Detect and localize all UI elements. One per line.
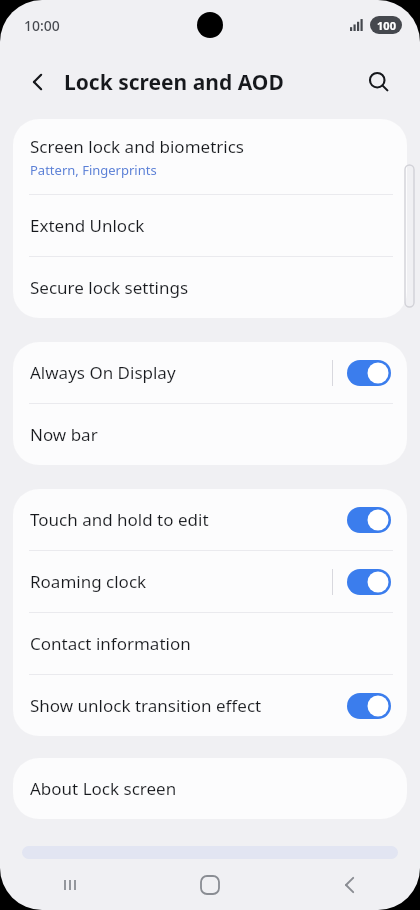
staticText: Now bar [30,423,98,446]
button[interactable]: Extend Unlock [13,195,407,256]
button[interactable]: Roaming clock [13,551,407,612]
button[interactable]: Touch and hold to edit [13,489,407,550]
staticText: 100 [377,18,396,33]
staticText: Lock screen and AOD [64,68,284,97]
button[interactable]: Back [280,859,420,910]
staticText: Screen lock and biometrics [30,135,244,158]
button[interactable]: Toggle Touch and hold to edit [347,507,407,533]
staticText: Contact information [30,632,191,655]
button[interactable]: Toggle Always On Display [347,360,407,386]
staticText: Always On Display [30,361,176,384]
staticText: Pattern, Fingerprints [30,161,157,179]
button[interactable]: Recents [0,859,140,910]
button[interactable]: Always On Display [13,342,407,403]
button[interactable]: Search [362,65,396,99]
button[interactable]: Secure lock settings [13,257,407,318]
staticText: 10:00 [24,16,60,35]
button[interactable]: Toggle Show unlock transition effect [347,693,407,719]
button[interactable]: Screen lock and biometrics [13,119,407,194]
button[interactable]: About Lock screen [13,758,407,819]
staticText: Secure lock settings [30,276,189,299]
button[interactable]: Back [22,65,56,99]
staticText: Extend Unlock [30,214,145,237]
staticText: Show unlock transition effect [30,694,262,717]
button[interactable]: Contact information [13,613,407,674]
staticText: Touch and hold to edit [30,508,209,531]
button[interactable]: Now bar [13,404,407,465]
button[interactable]: Home [140,859,280,910]
button[interactable]: Show unlock transition effect [13,675,407,736]
staticText: Roaming clock [30,570,147,593]
button[interactable]: Toggle Roaming clock [347,569,407,595]
staticText: About Lock screen [30,777,177,800]
